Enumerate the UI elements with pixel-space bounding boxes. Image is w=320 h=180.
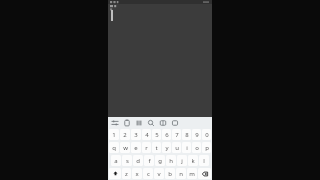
button[interactable]: Backspace — [198, 168, 211, 179]
button[interactable]: 4 — [142, 129, 151, 140]
staticText: r — [145, 144, 148, 152]
staticText: k — [191, 157, 195, 165]
staticText: g — [158, 157, 162, 165]
staticText: 0 — [205, 131, 209, 139]
button[interactable]: u — [172, 142, 181, 153]
staticText: x — [135, 170, 139, 178]
button[interactable]: Theme — [171, 119, 179, 127]
button[interactable] — [108, 4, 212, 117]
staticText: 8 — [185, 131, 189, 139]
button[interactable]: n — [176, 168, 186, 179]
staticText: p — [205, 144, 209, 152]
staticText: 2 — [123, 131, 127, 139]
staticText: q — [112, 144, 116, 152]
button[interactable]: h — [166, 155, 176, 166]
button[interactable]: 2 — [120, 129, 130, 140]
button[interactable]: d — [133, 155, 143, 166]
staticText: u — [175, 144, 179, 152]
button[interactable]: z — [122, 168, 131, 179]
button[interactable]: Clipboard — [123, 119, 131, 127]
staticText: 4 — [145, 131, 149, 139]
staticText: h — [169, 157, 173, 165]
button[interactable]: Text editing — [135, 119, 143, 127]
button[interactable]: Settings — [111, 119, 119, 127]
staticText: v — [157, 170, 161, 178]
button[interactable]: e — [131, 142, 141, 153]
button[interactable]: g — [155, 155, 165, 166]
button[interactable]: b — [165, 168, 175, 179]
staticText: l — [203, 157, 205, 165]
button[interactable]: t — [152, 142, 161, 153]
button[interactable]: w — [120, 142, 130, 153]
button[interactable]: c — [143, 168, 153, 179]
staticText: n — [179, 170, 183, 178]
button[interactable]: 9 — [192, 129, 201, 140]
button[interactable]: f — [144, 155, 154, 166]
button[interactable]: q — [109, 142, 119, 153]
button[interactable]: p — [202, 142, 211, 153]
button[interactable]: 0 — [202, 129, 211, 140]
staticText: b — [168, 170, 172, 178]
staticText: 6 — [165, 131, 169, 139]
staticText: 7 — [175, 131, 179, 139]
button[interactable]: k — [188, 155, 198, 166]
button[interactable]: Search — [147, 119, 155, 127]
button[interactable]: Sticker — [159, 119, 167, 127]
staticText: y — [165, 144, 169, 152]
staticText: o — [195, 144, 199, 152]
staticText: 3 — [134, 131, 138, 139]
staticText: i — [186, 144, 188, 152]
staticText: 1 — [112, 131, 116, 139]
button[interactable]: l — [199, 155, 209, 166]
button[interactable]: m — [187, 168, 197, 179]
staticText: d — [136, 157, 140, 165]
button[interactable]: x — [132, 168, 142, 179]
staticText: 5 — [155, 131, 159, 139]
button[interactable]: 8 — [182, 129, 191, 140]
staticText: j — [181, 157, 183, 165]
button[interactable]: s — [122, 155, 132, 166]
button[interactable]: Shift — [109, 168, 121, 179]
button[interactable]: o — [192, 142, 201, 153]
button[interactable]: a — [111, 155, 121, 166]
button[interactable]: 7 — [172, 129, 181, 140]
button[interactable]: 6 — [162, 129, 171, 140]
staticText: 9 — [195, 131, 199, 139]
button[interactable]: i — [182, 142, 191, 153]
button[interactable]: y — [162, 142, 171, 153]
staticText: m — [189, 170, 195, 178]
staticText: t — [155, 144, 158, 152]
button[interactable]: j — [177, 155, 187, 166]
staticText: z — [125, 170, 128, 178]
staticText: w — [123, 144, 128, 152]
button[interactable]: 3 — [131, 129, 141, 140]
staticText: f — [148, 157, 151, 165]
staticText: e — [134, 144, 138, 152]
staticText: a — [114, 157, 118, 165]
staticText: s — [126, 157, 129, 165]
button[interactable]: 1 — [109, 129, 119, 140]
staticText: c — [147, 170, 150, 178]
button[interactable]: v — [154, 168, 164, 179]
button[interactable]: r — [142, 142, 151, 153]
button[interactable]: 5 — [152, 129, 161, 140]
